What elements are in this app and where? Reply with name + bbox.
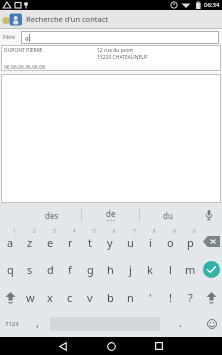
button[interactable]: v — [80, 283, 100, 311]
button[interactable]: l — [160, 255, 180, 283]
staticText: 12 rue du point — [97, 47, 134, 54]
staticText: , — [36, 315, 39, 330]
button[interactable]: h — [100, 255, 120, 283]
staticText: 8 — [153, 228, 156, 234]
button[interactable]: . — [160, 311, 201, 337]
staticText: j — [129, 262, 132, 277]
button[interactable]: x — [40, 283, 60, 311]
staticText: 3 — [53, 228, 56, 234]
button[interactable]: q — [0, 255, 20, 283]
button[interactable]: t — [80, 227, 100, 255]
staticText: z — [27, 235, 33, 250]
staticText: des — [45, 210, 59, 221]
staticText: 7 — [133, 228, 136, 234]
staticText: ? — [188, 290, 193, 305]
button[interactable]: r — [60, 227, 80, 255]
button[interactable] — [0, 283, 20, 311]
staticText: ! — [169, 290, 172, 305]
button[interactable]: i — [140, 227, 160, 255]
staticText: 2 — [33, 228, 36, 234]
button[interactable]: s — [20, 255, 40, 283]
button[interactable] — [195, 203, 222, 227]
staticText: h — [107, 262, 114, 277]
staticText: 13220 CHATEAUNEUF — [97, 54, 148, 61]
staticText: t — [88, 235, 92, 250]
staticText: u — [127, 235, 134, 250]
button[interactable] — [43, 337, 83, 355]
staticText: i — [149, 235, 152, 250]
button[interactable]: y — [100, 227, 120, 255]
staticText: 6 — [113, 228, 116, 234]
button[interactable]: z — [20, 227, 40, 255]
button[interactable]: de — [82, 203, 139, 227]
button[interactable]: u — [120, 227, 140, 255]
staticText: p — [187, 235, 194, 250]
staticText: 4 — [73, 228, 76, 234]
button[interactable] — [50, 311, 160, 337]
staticText: . — [179, 315, 182, 330]
staticText: l — [169, 262, 172, 277]
staticText: r — [68, 235, 73, 250]
staticText: 06:34 — [204, 1, 220, 9]
staticText: s — [27, 262, 33, 277]
staticText: DUPONT PIERRE — [4, 47, 43, 54]
button[interactable]: 7123 — [0, 311, 24, 337]
staticText: f — [68, 262, 72, 277]
button[interactable]: c — [60, 283, 80, 311]
staticText: 9 — [173, 228, 176, 234]
staticText: b — [107, 290, 114, 305]
button[interactable]: ' — [140, 283, 160, 311]
button[interactable]: ? — [180, 283, 200, 311]
staticText: 5 — [93, 228, 96, 234]
button[interactable] — [200, 255, 222, 283]
staticText: 1 — [13, 228, 16, 234]
button[interactable]: g — [80, 255, 100, 283]
button[interactable]: j — [120, 255, 140, 283]
button[interactable]: n — [120, 283, 140, 311]
staticText: 7123 — [5, 320, 19, 328]
staticText: ' — [149, 290, 152, 305]
button[interactable]: o — [160, 227, 180, 255]
staticText: v — [87, 290, 93, 305]
button[interactable]: w — [20, 283, 40, 311]
staticText: de — [106, 208, 116, 219]
button[interactable]: b — [100, 283, 120, 311]
staticText: n — [127, 290, 134, 305]
staticText: Filtre — [3, 34, 15, 41]
button[interactable] — [201, 311, 222, 337]
staticText: m — [185, 262, 196, 277]
staticText: g — [25, 34, 29, 42]
button[interactable]: g — [21, 31, 219, 44]
button[interactable] — [200, 227, 222, 255]
staticText: y — [107, 235, 113, 250]
staticText: d — [47, 262, 54, 277]
button[interactable]: du — [140, 203, 195, 227]
staticText: e — [47, 235, 54, 250]
button[interactable] — [200, 283, 222, 311]
staticText: a — [7, 235, 14, 250]
staticText: k — [147, 262, 153, 277]
staticText: x — [47, 290, 53, 305]
staticText: w — [26, 290, 35, 305]
button[interactable]: d — [40, 255, 60, 283]
button[interactable]: ! — [160, 283, 180, 311]
button[interactable]: f — [60, 255, 80, 283]
button[interactable] — [139, 337, 179, 355]
staticText: g — [87, 262, 94, 277]
staticText: c — [67, 290, 73, 305]
button[interactable]: DUPONT PIERRE — [1, 45, 221, 71]
button[interactable]: a — [0, 227, 20, 255]
staticText: 06.06.06.06.06.06 — [4, 64, 46, 71]
button[interactable]: , — [24, 311, 50, 337]
staticText: du — [163, 210, 173, 221]
button[interactable]: m — [180, 255, 200, 283]
staticText: Recherche d'un contact — [26, 14, 109, 24]
button[interactable] — [91, 337, 131, 355]
button[interactable]: e — [40, 227, 60, 255]
button[interactable]: k — [140, 255, 160, 283]
button[interactable]: des — [0, 203, 81, 227]
staticText: q — [7, 262, 14, 277]
staticText: o — [167, 235, 174, 250]
button[interactable]: p — [180, 227, 200, 255]
staticText: 0 — [193, 228, 196, 234]
